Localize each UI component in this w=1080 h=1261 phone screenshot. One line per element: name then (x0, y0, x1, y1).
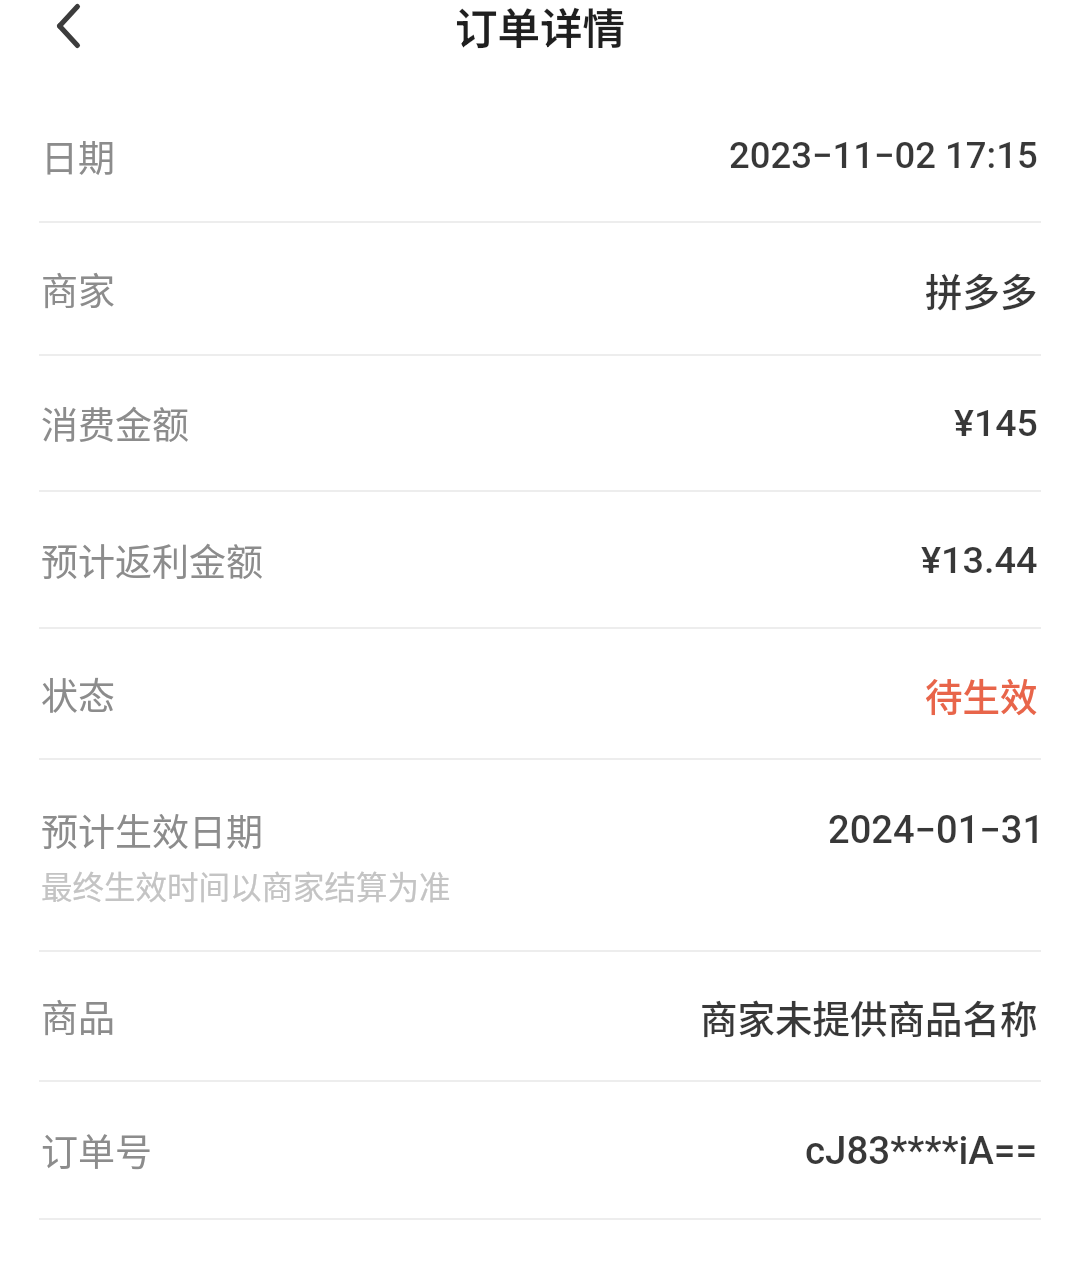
button[interactable]: 商品 (0, 952, 1080, 1080)
staticText: 订单详情 (455, 0, 626, 57)
button[interactable]: 预计返利金额 (0, 492, 1080, 627)
staticText: 日期 (41, 129, 115, 183)
button[interactable]: 订单号 (0, 1082, 1080, 1218)
staticText: ¥13.44 (921, 538, 1038, 582)
staticText: 商家未提供商品名称 (700, 989, 1038, 1043)
staticText: cJ83****iA== (805, 1128, 1038, 1173)
button[interactable]: 日期 (0, 90, 1080, 221)
staticText: 待生效 (925, 667, 1038, 721)
staticText: 拼多多 (925, 262, 1038, 316)
staticText: 最终生效时间以商家结算为准 (41, 862, 451, 908)
staticText: 订单号 (41, 1123, 152, 1177)
staticText: ¥145 (954, 401, 1038, 445)
staticText: 商家 (41, 262, 115, 316)
button[interactable]: 商家 (0, 223, 1080, 354)
button[interactable]: 预计生效日期 (0, 760, 1080, 950)
button[interactable]: 消费金额 (0, 356, 1080, 490)
staticText: 消费金额 (41, 396, 189, 450)
staticText: 预计返利金额 (41, 533, 263, 587)
button[interactable]: Back (20, 0, 116, 71)
staticText: 2024−01−31 (828, 808, 1045, 853)
staticText: 商品 (41, 989, 115, 1043)
button[interactable]: 状态 (0, 629, 1080, 758)
staticText: 预计生效日期 (41, 803, 263, 857)
staticText: 状态 (41, 667, 115, 721)
staticText: 2023−11−02 17:15 (729, 134, 1038, 177)
